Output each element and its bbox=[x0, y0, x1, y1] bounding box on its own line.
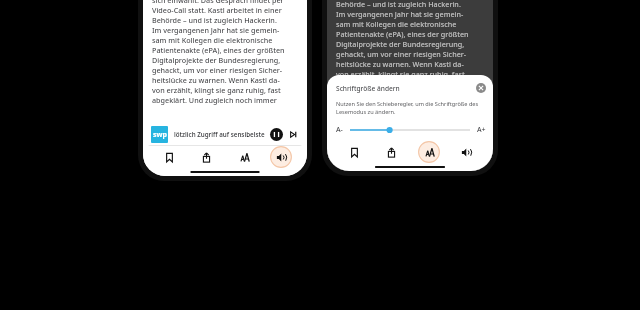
staticText: A+ bbox=[477, 125, 486, 135]
button[interactable]: Schließen bbox=[476, 83, 486, 93]
button[interactable]: A- bbox=[336, 123, 486, 137]
staticText: Lesemodus zu ändern. bbox=[336, 108, 396, 116]
button[interactable]: swp bbox=[147, 122, 303, 146]
button[interactable]: Vorlesen bbox=[270, 146, 292, 168]
button[interactable]: Vorlesen bbox=[455, 141, 477, 163]
staticText: sam mit Kollegen die elektronische bbox=[152, 35, 273, 45]
staticText: Behörde – und ist zugleich Hackerin. bbox=[336, 0, 461, 9]
button[interactable]: Pause bbox=[270, 128, 283, 141]
staticText: lötzlich Zugriff auf sensibelste bbox=[174, 130, 265, 138]
staticText: von erzählt, klingt sie ganz ruhig, fast bbox=[152, 85, 281, 95]
staticText: Behörde – und ist zugleich Hackerin. bbox=[152, 15, 277, 25]
button[interactable]: Teilen bbox=[195, 146, 217, 168]
button[interactable]: Next bbox=[288, 129, 299, 140]
staticText: Digitalprojekte der Bundesregierung, bbox=[336, 39, 465, 49]
staticText: sich einwählt. Das Gespräch findet per bbox=[152, 0, 284, 5]
staticText: Im vergangenen Jahr hat sie gemein- bbox=[152, 25, 280, 35]
staticText: gehackt, um vor einer riesigen Sicher- bbox=[152, 65, 283, 75]
staticText: von erzählt, klingt sie ganz ruhig, fast bbox=[336, 69, 465, 79]
staticText: Im vergangenen Jahr hat sie gemein- bbox=[336, 9, 464, 19]
button[interactable]: Schriftgröße bbox=[233, 146, 255, 168]
button[interactable]: Lesezeichen bbox=[343, 141, 365, 163]
staticText: Schriftgröße ändern bbox=[336, 84, 400, 93]
staticText: Patientenakte (ePA), eines der größten bbox=[336, 29, 469, 39]
staticText: heitslücke zu warnen. Wenn Kastl da- bbox=[336, 59, 464, 69]
staticText: swp bbox=[153, 130, 167, 140]
staticText: sam mit Kollegen die elektronische bbox=[336, 19, 457, 29]
staticText: heitslücke zu warnen. Wenn Kastl da- bbox=[152, 75, 280, 85]
button[interactable]: Schriftgröße bbox=[418, 141, 440, 163]
staticText: Video-Call statt. Kastl arbeitet in eine… bbox=[152, 5, 282, 15]
staticText: gehackt, um vor einer riesigen Sicher- bbox=[336, 49, 467, 59]
staticText: A- bbox=[336, 125, 343, 135]
staticText: Patientenakte (ePA), eines der größten bbox=[152, 45, 285, 55]
staticText: Nutzen Sie den Schieberegler, um die Sch… bbox=[336, 100, 479, 108]
staticText: Digitalprojekte der Bundesregierung, bbox=[152, 55, 281, 65]
button[interactable]: Teilen bbox=[380, 141, 402, 163]
staticText: abgeklärt. Und zugleich noch immer bbox=[152, 95, 277, 105]
button[interactable]: Lesezeichen bbox=[158, 146, 180, 168]
